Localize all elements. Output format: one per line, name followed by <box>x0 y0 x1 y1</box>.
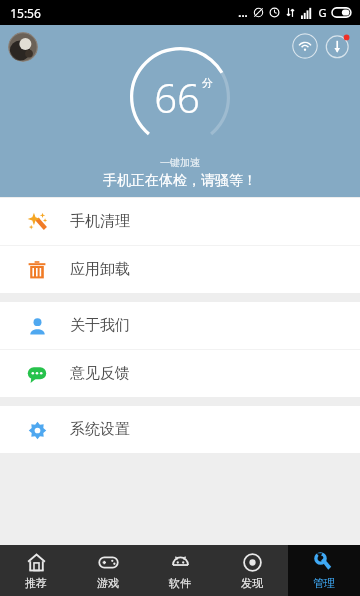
button[interactable]: 游戏 <box>72 545 144 596</box>
staticText: 15:56 <box>10 5 41 21</box>
staticText: 一键加速 <box>160 156 200 169</box>
button[interactable]: WiFi <box>292 33 318 59</box>
button[interactable]: 软件 <box>144 545 216 596</box>
button[interactable]: 意见反馈 <box>0 350 360 397</box>
staticText: 应用卸载 <box>70 260 130 279</box>
staticText: 意见反馈 <box>70 364 130 383</box>
button[interactable]: 手机清理 <box>0 198 360 245</box>
staticText: 管理 <box>313 576 335 590</box>
staticText: 发现 <box>241 576 263 590</box>
staticText: 手机清理 <box>70 212 130 231</box>
staticText: 推荐 <box>25 576 47 590</box>
button[interactable]: 系统设置 <box>0 406 360 453</box>
staticText: 66 <box>154 70 200 124</box>
button[interactable]: Downloads <box>325 33 351 59</box>
button[interactable]: 应用卸载 <box>0 246 360 293</box>
button[interactable]: Profile <box>8 32 38 62</box>
staticText: 软件 <box>169 576 191 590</box>
staticText: 系统设置 <box>70 420 130 439</box>
staticText: G <box>318 5 327 20</box>
staticText: 分 <box>202 76 213 90</box>
staticText: 手机正在体检，请骚等！ <box>103 172 257 190</box>
staticText: 关于我们 <box>70 316 130 335</box>
button[interactable]: 推荐 <box>0 545 72 596</box>
staticText: 游戏 <box>97 576 119 590</box>
button[interactable]: 关于我们 <box>0 302 360 349</box>
button[interactable]: Score 66 <box>130 47 230 147</box>
button[interactable]: 发现 <box>216 545 288 596</box>
staticText: ... <box>238 5 248 20</box>
button[interactable]: 管理 <box>288 545 360 596</box>
